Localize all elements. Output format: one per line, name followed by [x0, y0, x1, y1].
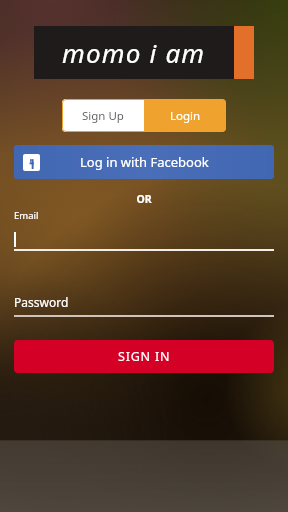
staticText: SIGN IN: [118, 348, 171, 365]
button[interactable]: Password: [14, 293, 274, 310]
staticText: Email: [14, 209, 39, 222]
staticText: momo i am: [62, 35, 206, 70]
staticText: Log in with Facebook: [80, 153, 209, 171]
button[interactable]: SIGN IN: [14, 340, 274, 373]
button[interactable]: Sign Up: [62, 99, 144, 132]
button[interactable]: Login: [144, 99, 226, 132]
staticText: Password: [14, 294, 69, 310]
staticText: Sign Up: [82, 108, 124, 124]
staticText: Login: [170, 108, 201, 124]
button[interactable]: [14, 230, 274, 249]
staticText: OR: [0, 192, 288, 206]
button[interactable]: Log in with Facebook: [14, 145, 274, 179]
